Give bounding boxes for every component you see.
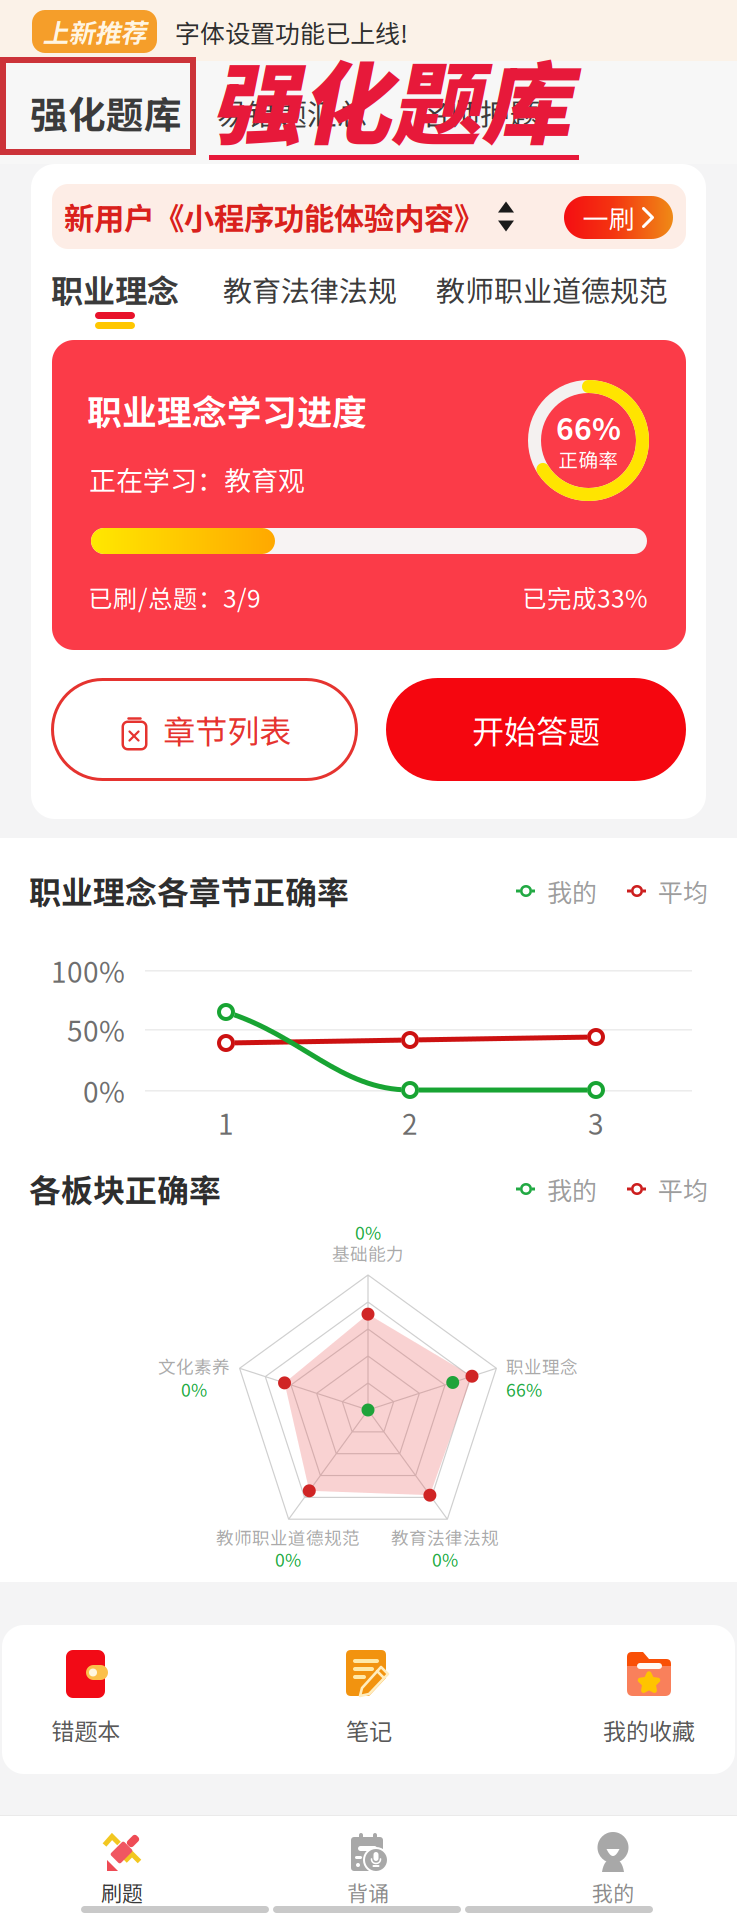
staticText: 上新推荐 xyxy=(42,13,146,50)
button[interactable]: 名师押题 xyxy=(385,61,575,164)
button[interactable]: 职业理念 xyxy=(40,269,190,309)
staticText: 笔记 xyxy=(346,1713,392,1747)
button[interactable]: 教育法律法规 xyxy=(210,269,410,309)
staticText: 50% xyxy=(67,1009,125,1050)
staticText: 正确率 xyxy=(558,445,618,473)
button[interactable]: 新用户《小程序功能体验内容》 xyxy=(64,184,544,249)
staticText: 职业理念 xyxy=(51,266,179,312)
staticText: 3 xyxy=(588,1102,604,1143)
staticText: 我的收藏 xyxy=(603,1713,695,1747)
staticText: 强化题库 xyxy=(211,33,571,163)
staticText: 0% xyxy=(83,1070,125,1111)
button[interactable]: 背诵 xyxy=(268,1832,468,1914)
staticText: 平均 xyxy=(658,1171,708,1207)
staticText: 0% xyxy=(432,1546,458,1572)
staticText: 0% xyxy=(275,1546,301,1572)
staticText: 教育法律法规 xyxy=(391,1524,499,1550)
staticText: 各板块正确率 xyxy=(29,1165,221,1211)
button[interactable]: 我的收藏 xyxy=(559,1648,737,1750)
button[interactable]: 我的 xyxy=(513,1832,713,1914)
staticText: 66% xyxy=(556,405,621,449)
staticText: 教育法律法规 xyxy=(223,268,397,310)
staticText: 名师押题 xyxy=(420,91,540,134)
staticText: 1 xyxy=(218,1102,234,1143)
staticText: 职业理念各章节正确率 xyxy=(29,867,349,913)
staticText: 已刷/总题：3/9 xyxy=(88,579,261,615)
staticText: 职业理念 xyxy=(506,1353,578,1379)
button[interactable]: 刷题 xyxy=(22,1832,222,1914)
button[interactable]: 章节列表 xyxy=(51,678,358,781)
staticText: 我的 xyxy=(547,873,597,909)
button[interactable]: 强化题库 xyxy=(11,61,201,164)
button[interactable]: 易错题汇总 xyxy=(197,61,387,164)
staticText: 我的 xyxy=(547,1171,597,1207)
staticText: 错题本 xyxy=(51,1713,120,1747)
staticText: 字体设置功能已上线! xyxy=(175,14,408,50)
staticText: 100% xyxy=(51,950,125,991)
staticText: 文化素养 xyxy=(158,1353,230,1379)
staticText: 基础能力 xyxy=(332,1240,404,1266)
staticText: 新用户《小程序功能体验内容》 xyxy=(64,194,484,238)
staticText: 易错题汇总 xyxy=(217,91,367,134)
staticText: 刷题 xyxy=(101,1877,143,1907)
staticText: 教师职业道德规范 xyxy=(216,1524,360,1550)
staticText: 背诵 xyxy=(347,1877,389,1907)
staticText: 已完成33% xyxy=(522,579,648,615)
staticText: 一刷 xyxy=(582,199,634,236)
staticText: 职业理念学习进度 xyxy=(87,385,367,435)
staticText: 0% xyxy=(355,1219,381,1245)
button[interactable]: 错题本 xyxy=(0,1648,176,1750)
staticText: 正在学习：教育观 xyxy=(89,459,305,499)
button[interactable]: 开始答题 xyxy=(386,678,686,781)
button[interactable]: 教师职业道德规范 xyxy=(422,269,682,309)
button[interactable]: 一刷 xyxy=(564,196,673,239)
staticText: 0% xyxy=(181,1376,207,1402)
staticText: 开始答题 xyxy=(472,706,600,753)
staticText: 2 xyxy=(402,1102,418,1143)
button[interactable]: 笔记 xyxy=(279,1648,459,1750)
staticText: 我的 xyxy=(592,1877,634,1907)
staticText: 章节列表 xyxy=(163,706,291,753)
staticText: 教师职业道德规范 xyxy=(436,268,668,310)
staticText: 平均 xyxy=(658,873,708,909)
staticText: 强化题库 xyxy=(30,85,182,140)
staticText: 66% xyxy=(506,1376,542,1402)
